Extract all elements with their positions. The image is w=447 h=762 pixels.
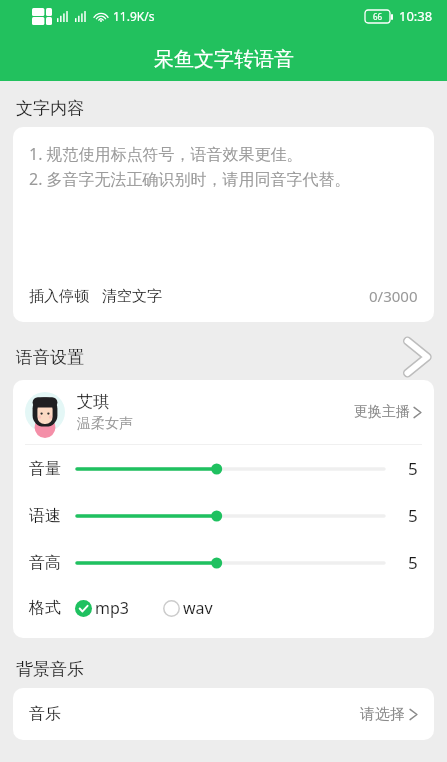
staticText: 请选择 — [360, 705, 405, 724]
staticText: 1. 规范使用标点符号，语音效果更佳。 — [29, 143, 303, 165]
staticText: 更换主播 — [354, 403, 410, 421]
staticText: 5 — [408, 457, 418, 480]
staticText: 格式 — [29, 598, 61, 618]
staticText: 2. 多音字无法正确识别时，请用同音字代替。 — [29, 168, 351, 190]
staticText: 音乐 — [29, 704, 61, 724]
staticText: 音量 — [29, 459, 61, 479]
button[interactable]: wav — [163, 597, 213, 619]
staticText: mp3 — [95, 597, 129, 619]
button[interactable] — [77, 504, 384, 528]
staticText: 艾琪 — [77, 392, 109, 412]
button[interactable] — [77, 551, 384, 575]
button[interactable]: mp3 — [75, 597, 129, 619]
button[interactable]: 1. 规范使用标点符号，语音效果更佳。 — [13, 127, 434, 322]
staticText: 插入停顿 — [29, 287, 89, 306]
button[interactable]: 展开语音设置 — [395, 335, 439, 379]
staticText: 音高 — [29, 553, 61, 573]
button[interactable]: 插入停顿 — [29, 287, 89, 306]
button[interactable]: 艾琪 — [25, 380, 422, 444]
staticText: 11.9K/s — [113, 8, 155, 24]
button[interactable] — [77, 457, 384, 481]
staticText: 10:38 — [399, 7, 433, 25]
button[interactable]: 音乐 — [29, 688, 418, 740]
staticText: 5 — [408, 504, 418, 527]
staticText: 文字内容 — [16, 98, 84, 119]
staticText: 背景音乐 — [16, 659, 84, 680]
staticText: 66 — [373, 11, 383, 22]
staticText: 呆鱼文字转语音 — [154, 47, 294, 72]
staticText: 5 — [408, 551, 418, 574]
button[interactable]: 清空文字 — [102, 287, 162, 306]
staticText: wav — [183, 597, 213, 619]
staticText: 温柔女声 — [77, 415, 133, 433]
staticText: 语音设置 — [16, 347, 84, 368]
staticText: 清空文字 — [102, 287, 162, 306]
staticText: 0/3000 — [369, 286, 418, 306]
staticText: 语速 — [29, 506, 61, 526]
